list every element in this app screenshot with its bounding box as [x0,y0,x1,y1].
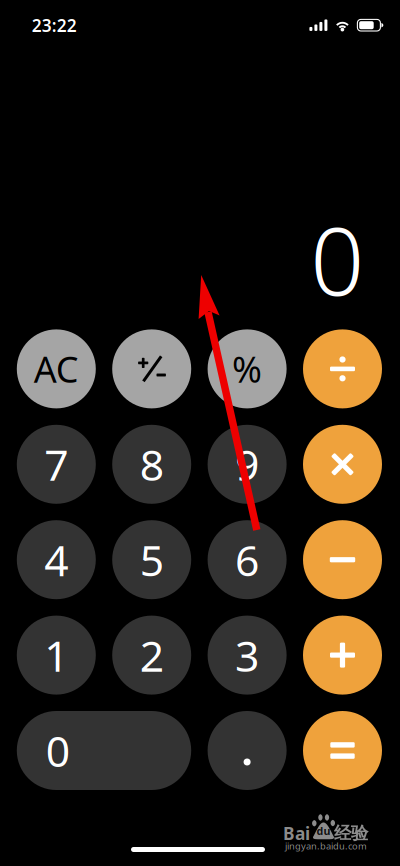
staticText: du [316,824,330,838]
staticText: 9 [235,436,259,493]
button[interactable]: 6 [208,520,287,599]
staticText: 0 [310,196,364,322]
button[interactable]: Decimal point [208,711,287,790]
button[interactable]: Multiply [303,425,382,504]
staticText: 经验 [334,823,368,844]
button[interactable]: % [208,329,287,408]
button[interactable]: Divide [303,329,382,408]
staticText: % [232,345,262,393]
button[interactable]: Equals [303,711,382,790]
button[interactable]: 4 [17,520,96,599]
staticText: 5 [140,531,164,588]
staticText: 2 [140,627,164,683]
button[interactable]: Add [303,616,382,695]
button[interactable]: 7 [17,425,96,504]
staticText: Bai [283,822,310,845]
button[interactable]: 9 [208,425,287,504]
staticText: jingyan.baidu.com [285,840,367,852]
staticText: 1 [44,627,68,683]
staticText: AC [34,345,79,393]
button[interactable]: AC [17,329,96,408]
button[interactable]: 0 [17,711,191,790]
staticText: 6 [235,531,259,588]
staticText: 3 [235,627,259,683]
button[interactable]: Subtract [303,520,382,599]
button[interactable]: Toggle sign [112,329,191,408]
staticText: 7 [44,436,68,493]
staticText: 0 [46,722,70,779]
button[interactable]: 3 [208,616,287,695]
button[interactable]: 8 [112,425,191,504]
staticText: 4 [44,531,68,588]
button[interactable]: 1 [17,616,96,695]
button[interactable]: 2 [112,616,191,695]
staticText: 8 [140,436,164,493]
button[interactable]: 5 [112,520,191,599]
staticText: 23:22 [32,14,77,37]
